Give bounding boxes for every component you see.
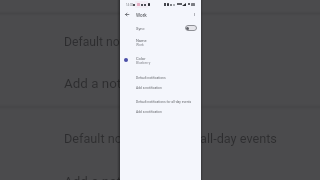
staticText: Default notifications (64, 35, 174, 49)
button[interactable]: Name (120, 36, 201, 49)
button[interactable]: Add a notification (120, 107, 201, 117)
button[interactable]: Default notifications (120, 73, 201, 83)
staticText: 14:02 (126, 3, 134, 6)
staticText: Blueberry (136, 61, 151, 65)
button[interactable]: Default notifications for all-day events (120, 97, 201, 107)
button[interactable]: Color (120, 54, 201, 67)
staticText: Default notifications for all-day events (136, 100, 192, 104)
staticText: Sync (136, 26, 145, 31)
staticText: Color (136, 56, 146, 61)
button[interactable]: Back (121, 9, 132, 20)
staticText: Add a notification (136, 110, 162, 114)
staticText: Add a notification (64, 76, 169, 92)
staticText: Default notifications for all-day events (64, 131, 277, 146)
button[interactable]: More options (189, 9, 200, 20)
staticText: Add a notification (136, 86, 162, 90)
staticText: Add a notification (64, 174, 169, 180)
staticText: Name (136, 38, 147, 43)
staticText: Work (136, 13, 147, 19)
button[interactable]: Sync (120, 22, 201, 34)
button[interactable]: Add a notification (120, 83, 201, 93)
staticText: Work (136, 43, 144, 47)
staticText: Default notifications (136, 76, 166, 80)
